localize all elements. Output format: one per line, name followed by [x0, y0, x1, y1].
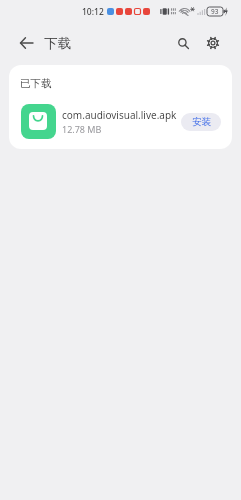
staticText: 93	[211, 7, 219, 16]
staticText: 12.78 MB	[62, 123, 102, 135]
staticText: com.audiovisual.live.apk	[62, 108, 177, 122]
button[interactable]: 安装	[181, 113, 221, 131]
staticText: 下载	[44, 35, 71, 52]
staticText: 10:12	[82, 6, 104, 18]
button[interactable]: com.audiovisual.live.apk	[9, 104, 232, 139]
button[interactable]: Search	[168, 28, 198, 58]
button[interactable]: Back	[6, 23, 46, 63]
staticText: 安装	[192, 116, 211, 128]
button[interactable]: Settings	[198, 28, 228, 58]
staticText: 已下载	[20, 77, 52, 90]
